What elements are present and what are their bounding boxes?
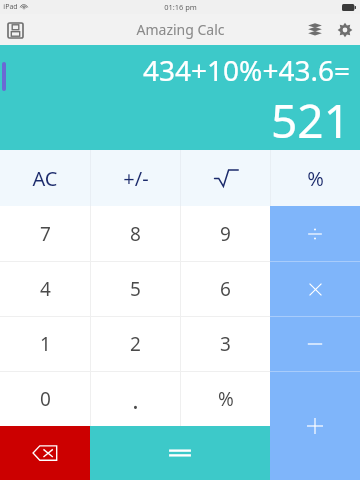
button[interactable]: AC: [0, 150, 90, 206]
staticText: %: [307, 165, 324, 192]
staticText: 3: [220, 331, 231, 357]
button[interactable]: %: [181, 372, 270, 426]
button[interactable]: Layers: [300, 15, 330, 45]
staticText: 6: [220, 276, 231, 302]
button[interactable]: 4: [0, 262, 90, 316]
button[interactable]: %: [271, 150, 360, 206]
button[interactable]: .: [91, 372, 180, 426]
staticText: .: [132, 383, 139, 416]
staticText: iPad: [3, 2, 18, 12]
staticText: AC: [32, 165, 58, 192]
button[interactable]: Operator: [270, 372, 360, 480]
button[interactable]: Settings: [330, 15, 360, 45]
staticText: 8: [130, 221, 141, 247]
button[interactable]: +/-: [91, 150, 180, 206]
button[interactable]: 2: [91, 317, 180, 371]
button[interactable]: 9: [181, 206, 270, 261]
button[interactable]: 0: [0, 372, 90, 426]
staticText: +/-: [123, 165, 149, 192]
button[interactable]: [181, 150, 270, 206]
staticText: 434+10%+43.6=: [143, 51, 350, 89]
staticText: 9: [220, 221, 231, 247]
staticText: 7: [40, 221, 51, 247]
staticText: 1: [40, 331, 51, 357]
button[interactable]: 7: [0, 206, 90, 261]
staticText: 521: [271, 89, 350, 150]
staticText: 2: [130, 331, 141, 357]
button[interactable]: [90, 426, 270, 480]
staticText: Amazing Calc: [136, 20, 225, 39]
button[interactable]: Operator: [270, 206, 360, 261]
button[interactable]: 5: [91, 262, 180, 316]
staticText: 4: [40, 276, 51, 302]
button[interactable]: Save: [0, 15, 30, 45]
staticText: %: [218, 386, 234, 412]
staticText: 0: [40, 386, 51, 412]
button[interactable]: 6: [181, 262, 270, 316]
button[interactable]: 3: [181, 317, 270, 371]
button[interactable]: Operator: [270, 317, 360, 371]
button[interactable]: Backspace: [0, 426, 90, 480]
staticText: 5: [130, 276, 141, 302]
button[interactable]: Operator: [270, 262, 360, 316]
button[interactable]: 8: [91, 206, 180, 261]
staticText: 01:16 pm: [164, 2, 197, 12]
button[interactable]: 1: [0, 317, 90, 371]
